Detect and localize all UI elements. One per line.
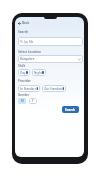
- button[interactable]: Joy Ma: [18, 37, 83, 46]
- button[interactable]: Search: [62, 106, 79, 113]
- button[interactable]: Back: [18, 21, 30, 25]
- staticText: Out Standard: [44, 87, 63, 91]
- staticText: Back: [22, 21, 30, 25]
- staticText: Search: [18, 30, 29, 34]
- button[interactable]: Day: [18, 69, 30, 76]
- staticText: Day: [20, 71, 26, 75]
- staticText: Joy Ma: [24, 40, 34, 44]
- button[interactable]: In Standard: [18, 85, 40, 92]
- button[interactable]: Bangalore: [18, 55, 83, 63]
- staticText: Search: [65, 108, 76, 112]
- button[interactable]: Out Standard: [42, 85, 66, 92]
- staticText: Gender: [18, 93, 30, 97]
- button[interactable]: Night: [32, 69, 46, 76]
- staticText: Night: [34, 71, 42, 75]
- staticText: F: [32, 99, 34, 103]
- button[interactable]: M: [18, 98, 26, 104]
- staticText: M: [21, 99, 24, 103]
- button[interactable]: F: [29, 98, 37, 104]
- staticText: Provider: [18, 79, 31, 83]
- staticText: Bangalore: [20, 57, 35, 61]
- staticText: Select Location: [18, 50, 41, 54]
- staticText: Shift: [18, 64, 25, 68]
- staticText: In Standard: [20, 87, 37, 91]
